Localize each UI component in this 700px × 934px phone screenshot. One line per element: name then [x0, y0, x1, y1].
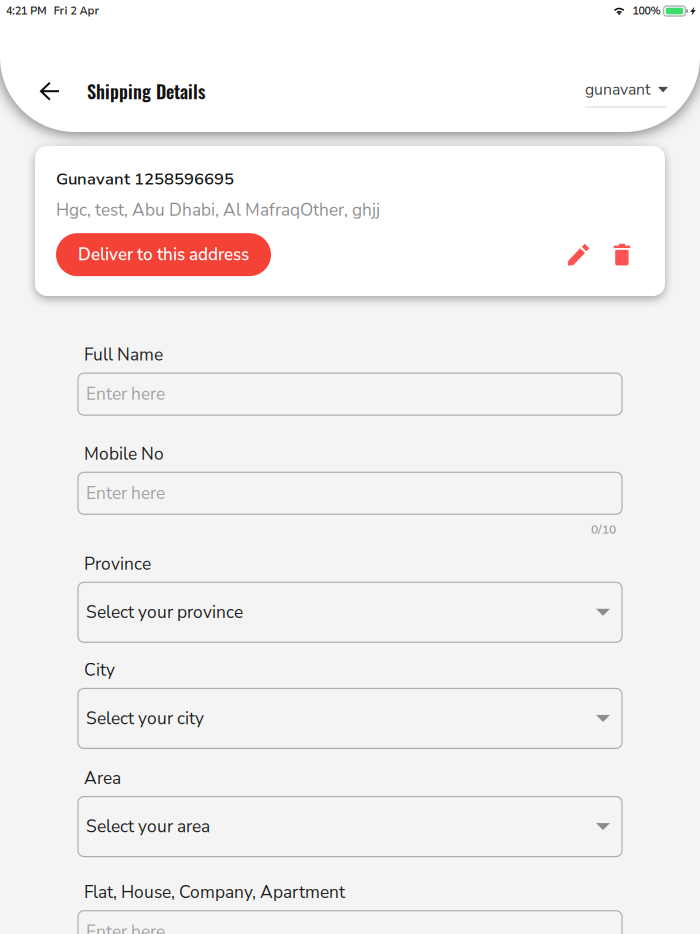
- staticText: 0/10: [591, 521, 616, 538]
- staticText: 100%: [632, 4, 660, 18]
- staticText: Select your area: [86, 815, 210, 838]
- staticText: Area: [84, 766, 121, 790]
- staticText: Enter here: [86, 481, 165, 505]
- button[interactable]: Select your city: [78, 688, 622, 748]
- button[interactable]: Edit address: [557, 233, 604, 276]
- staticText: Mobile No: [84, 442, 164, 466]
- staticText: Province: [84, 552, 151, 576]
- staticText: Full Name: [84, 343, 163, 367]
- button[interactable]: Enter here: [78, 472, 622, 514]
- button[interactable]: Select your province: [78, 582, 622, 642]
- staticText: gunavant: [585, 79, 651, 100]
- staticText: 4:21 PM: [6, 4, 47, 18]
- staticText: Enter here: [86, 382, 165, 406]
- staticText: Gunavant 1258596695: [56, 168, 234, 190]
- staticText: Fri 2 Apr: [53, 4, 99, 18]
- staticText: Select your province: [86, 600, 243, 624]
- staticText: Enter here: [86, 920, 165, 934]
- staticText: Shipping Details: [87, 78, 205, 105]
- button[interactable]: Enter here: [78, 911, 622, 934]
- staticText: Deliver to this address: [78, 243, 249, 266]
- button[interactable]: gunavant: [585, 74, 668, 108]
- staticText: Hgc, test, Abu Dhabi, Al MafraqOther, gh…: [56, 198, 380, 222]
- staticText: City: [84, 658, 115, 682]
- staticText: Flat, House, Company, Apartment: [84, 881, 345, 904]
- button[interactable]: Delete address: [604, 233, 640, 276]
- button[interactable]: Select your area: [78, 797, 622, 857]
- staticText: Select your city: [86, 707, 204, 730]
- button[interactable]: Back: [29, 71, 71, 112]
- button[interactable]: Deliver to this address: [56, 233, 271, 276]
- button[interactable]: Enter here: [78, 373, 622, 415]
